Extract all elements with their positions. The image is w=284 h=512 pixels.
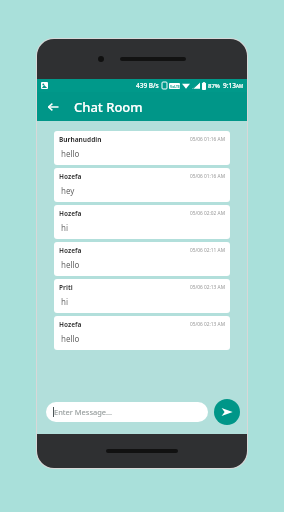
button[interactable]: Hozefa	[54, 205, 230, 239]
staticText: Enter Message...	[54, 407, 113, 417]
staticText: VoLTE	[170, 84, 180, 89]
button[interactable]: Hozefa	[54, 316, 230, 350]
staticText: Hozefa	[59, 209, 82, 218]
button[interactable]: Send	[214, 399, 240, 425]
staticText: hello	[61, 148, 80, 159]
button[interactable]: Burhanuddin	[54, 131, 230, 165]
staticText: AM	[236, 83, 244, 89]
staticText: hello	[61, 259, 80, 270]
button[interactable]: Hozefa	[54, 242, 230, 276]
button[interactable]: Back	[42, 96, 64, 118]
staticText: hi	[61, 222, 69, 233]
staticText: 87%	[208, 82, 220, 90]
staticText: 439 B/s	[136, 81, 159, 90]
staticText: hello	[61, 333, 80, 344]
staticText: 9:13	[223, 81, 236, 90]
staticText: 05/06 01:16 AM	[190, 136, 225, 143]
staticText: Hozefa	[59, 246, 82, 255]
staticText: 05/06 02:13 AM	[190, 321, 225, 328]
staticText: 05/06 02:02 AM	[190, 210, 225, 217]
staticText: Chat Room	[74, 98, 143, 116]
staticText: 05/06 02:13 AM	[190, 284, 225, 291]
staticText: Burhanuddin	[59, 135, 102, 144]
button[interactable]: Priti	[54, 279, 230, 313]
staticText: Hozefa	[59, 172, 82, 181]
staticText: Priti	[59, 283, 73, 292]
button[interactable]: Hozefa	[54, 168, 230, 202]
staticText: hi	[61, 296, 69, 307]
staticText: hey	[61, 185, 75, 196]
staticText: 05/06 02:11 AM	[190, 247, 225, 254]
button[interactable]: Enter Message...	[46, 402, 208, 422]
staticText: Hozefa	[59, 320, 82, 329]
staticText: 05/06 01:16 AM	[190, 173, 225, 180]
